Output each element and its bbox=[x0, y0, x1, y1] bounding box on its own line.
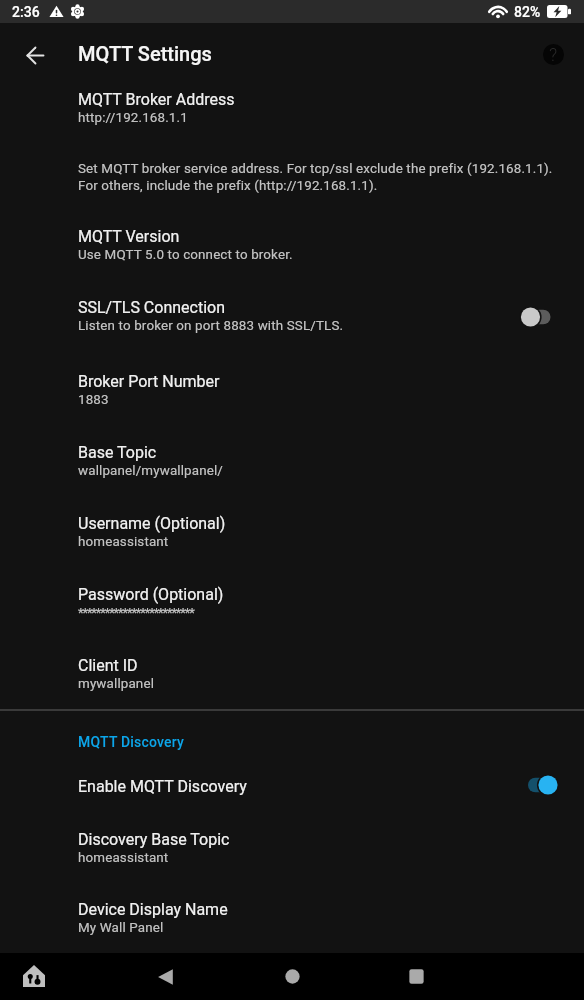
button[interactable]: Enable SSL/TLS bbox=[508, 293, 564, 341]
button[interactable]: Home bbox=[284, 968, 301, 985]
staticText: ************************** bbox=[78, 605, 194, 620]
button[interactable]: MQTT Version bbox=[0, 210, 584, 268]
button[interactable]: Device Display Name bbox=[0, 883, 584, 941]
staticText: Set MQTT broker service address. For tcp… bbox=[78, 161, 553, 193]
button[interactable]: Disable MQTT discovery bbox=[508, 763, 564, 807]
staticText: MQTT Settings bbox=[78, 42, 212, 65]
staticText: Username (Optional) bbox=[78, 514, 226, 533]
staticText: Discovery Base Topic bbox=[78, 830, 230, 849]
button[interactable]: Broker Port Number bbox=[0, 355, 584, 413]
staticText: 1883 bbox=[78, 392, 109, 408]
button[interactable]: Back bbox=[14, 34, 54, 74]
button[interactable]: MQTT Broker Address bbox=[0, 73, 584, 131]
button[interactable]: Help bbox=[533, 34, 573, 74]
staticText: 82% bbox=[514, 4, 541, 20]
staticText: http://192.168.1.1 bbox=[78, 110, 188, 126]
staticText: Listen to broker on port 8883 with SSL/T… bbox=[78, 318, 344, 334]
button[interactable]: SSL/TLS Connection bbox=[0, 281, 584, 339]
staticText: mywallpanel bbox=[78, 676, 155, 692]
button[interactable]: Username (Optional) bbox=[0, 497, 584, 555]
staticText: MQTT Version bbox=[78, 227, 180, 246]
button[interactable]: Recents bbox=[408, 968, 425, 985]
staticText: homeassistant bbox=[78, 850, 169, 866]
staticText: MQTT Discovery bbox=[78, 734, 185, 750]
staticText: Use MQTT 5.0 to connect to broker. bbox=[78, 247, 293, 263]
button[interactable]: Client ID bbox=[0, 639, 584, 697]
staticText: My Wall Panel bbox=[78, 920, 164, 936]
staticText: Base Topic bbox=[78, 443, 157, 462]
staticText: Client ID bbox=[78, 656, 138, 675]
staticText: Enable MQTT Discovery bbox=[78, 777, 247, 796]
staticText: 2:36 bbox=[12, 4, 40, 20]
button[interactable]: Enable MQTT Discovery bbox=[0, 760, 584, 804]
staticText: homeassistant bbox=[78, 534, 169, 550]
staticText: Device Display Name bbox=[78, 900, 228, 919]
staticText: wallpanel/mywallpanel/ bbox=[78, 463, 224, 479]
button[interactable]: Back bbox=[157, 968, 175, 986]
staticText: Broker Port Number bbox=[78, 372, 220, 391]
staticText: ? bbox=[549, 44, 558, 65]
button[interactable]: Base Topic bbox=[0, 426, 584, 484]
staticText: Password (Optional) bbox=[78, 585, 224, 604]
button[interactable]: Discovery Base Topic bbox=[0, 813, 584, 871]
button[interactable]: Home Assistant bbox=[17, 959, 51, 993]
button[interactable]: Password (Optional) bbox=[0, 568, 584, 612]
staticText: MQTT Broker Address bbox=[78, 90, 235, 109]
staticText: SSL/TLS Connection bbox=[78, 298, 226, 317]
